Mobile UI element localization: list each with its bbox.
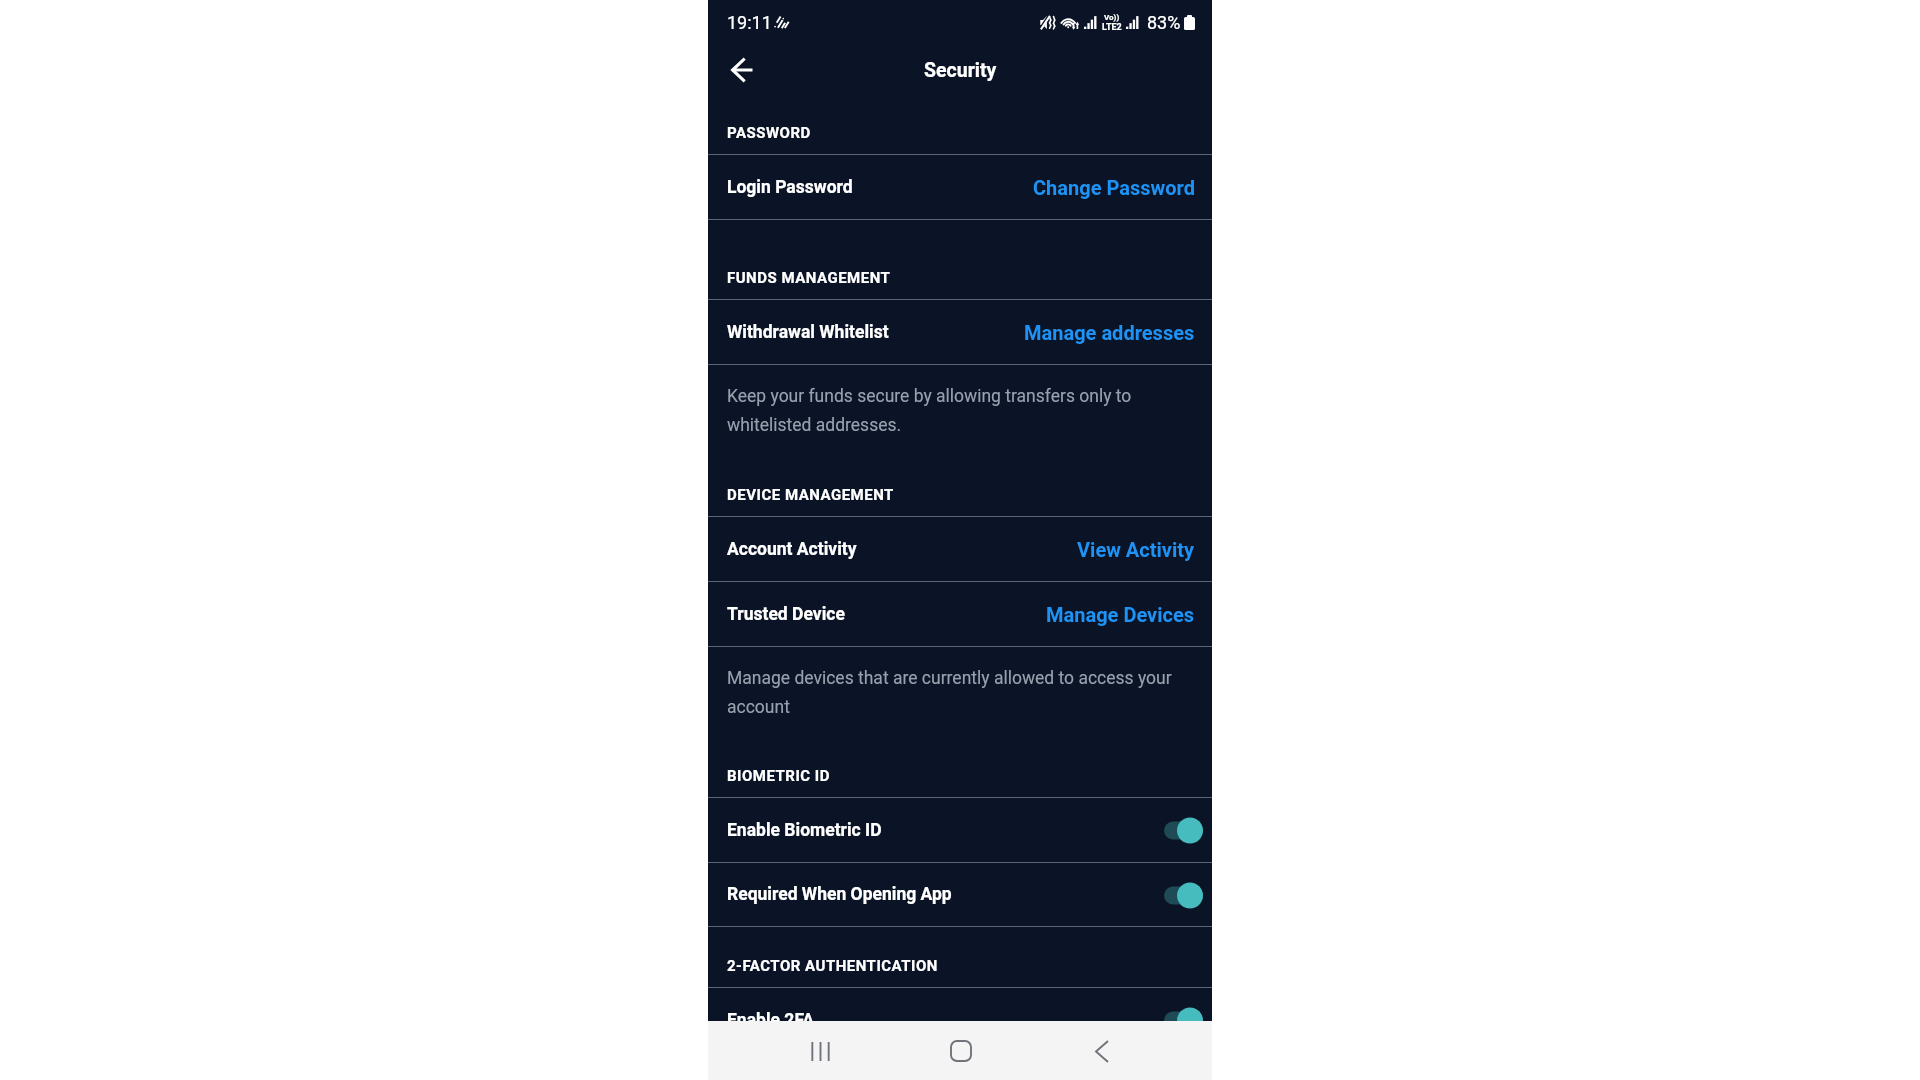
staticText: Trusted Device (727, 604, 845, 625)
staticText: FUNDS MANAGEMENT (727, 269, 891, 287)
button[interactable]: Enable Biometric ID (708, 798, 1212, 862)
staticText: 83% (1147, 12, 1181, 33)
staticText: 2-FACTOR AUTHENTICATION (727, 957, 938, 975)
button[interactable]: Account Activity (708, 517, 1212, 581)
button[interactable]: Required When Opening App (708, 863, 1212, 926)
staticText: Vo)) (1104, 13, 1120, 22)
button[interactable]: Recent apps (796, 1027, 844, 1075)
button[interactable]: View Activity (1077, 517, 1195, 581)
staticText: Manage addresses (1024, 321, 1195, 344)
button[interactable]: Toggle Required When Opening App (1159, 871, 1207, 919)
staticText: PASSWORD (727, 124, 811, 142)
staticText: Manage devices that are currently allowe… (727, 668, 1184, 717)
button[interactable]: Toggle Enable Biometric ID (1159, 806, 1207, 854)
staticText: Enable 2FA (727, 1010, 815, 1031)
staticText: DEVICE MANAGEMENT (727, 486, 894, 504)
staticText: BIOMETRIC ID (727, 767, 830, 785)
staticText: Keep your funds secure by allowing trans… (727, 386, 1184, 435)
button[interactable]: Change Password (1033, 155, 1195, 219)
button[interactable]: Toggle Enable 2FA (1159, 996, 1207, 1044)
button[interactable]: Manage Devices (1046, 582, 1195, 646)
button[interactable]: Back (720, 48, 764, 92)
button[interactable]: Manage addresses (1024, 300, 1195, 364)
staticText: Change Password (1033, 176, 1195, 199)
button[interactable]: Home (937, 1027, 985, 1075)
button[interactable]: Enable 2FA (708, 988, 1212, 1052)
staticText: View Activity (1077, 538, 1195, 561)
staticText: Account Activity (727, 539, 857, 560)
staticText: Login Password (727, 177, 853, 198)
button[interactable]: Withdrawal Whitelist (708, 300, 1212, 364)
staticText: 19:11 (727, 12, 772, 33)
staticText: Security (924, 59, 997, 82)
button[interactable]: Trusted Device (708, 582, 1212, 646)
button[interactable]: Login Password (708, 155, 1212, 219)
staticText: Withdrawal Whitelist (727, 322, 889, 343)
staticText: Manage Devices (1046, 603, 1195, 626)
staticText: Enable Biometric ID (727, 820, 882, 841)
button[interactable]: Back (1078, 1027, 1126, 1075)
staticText: Required When Opening App (727, 884, 952, 905)
staticText: LTE2 (1102, 22, 1122, 33)
